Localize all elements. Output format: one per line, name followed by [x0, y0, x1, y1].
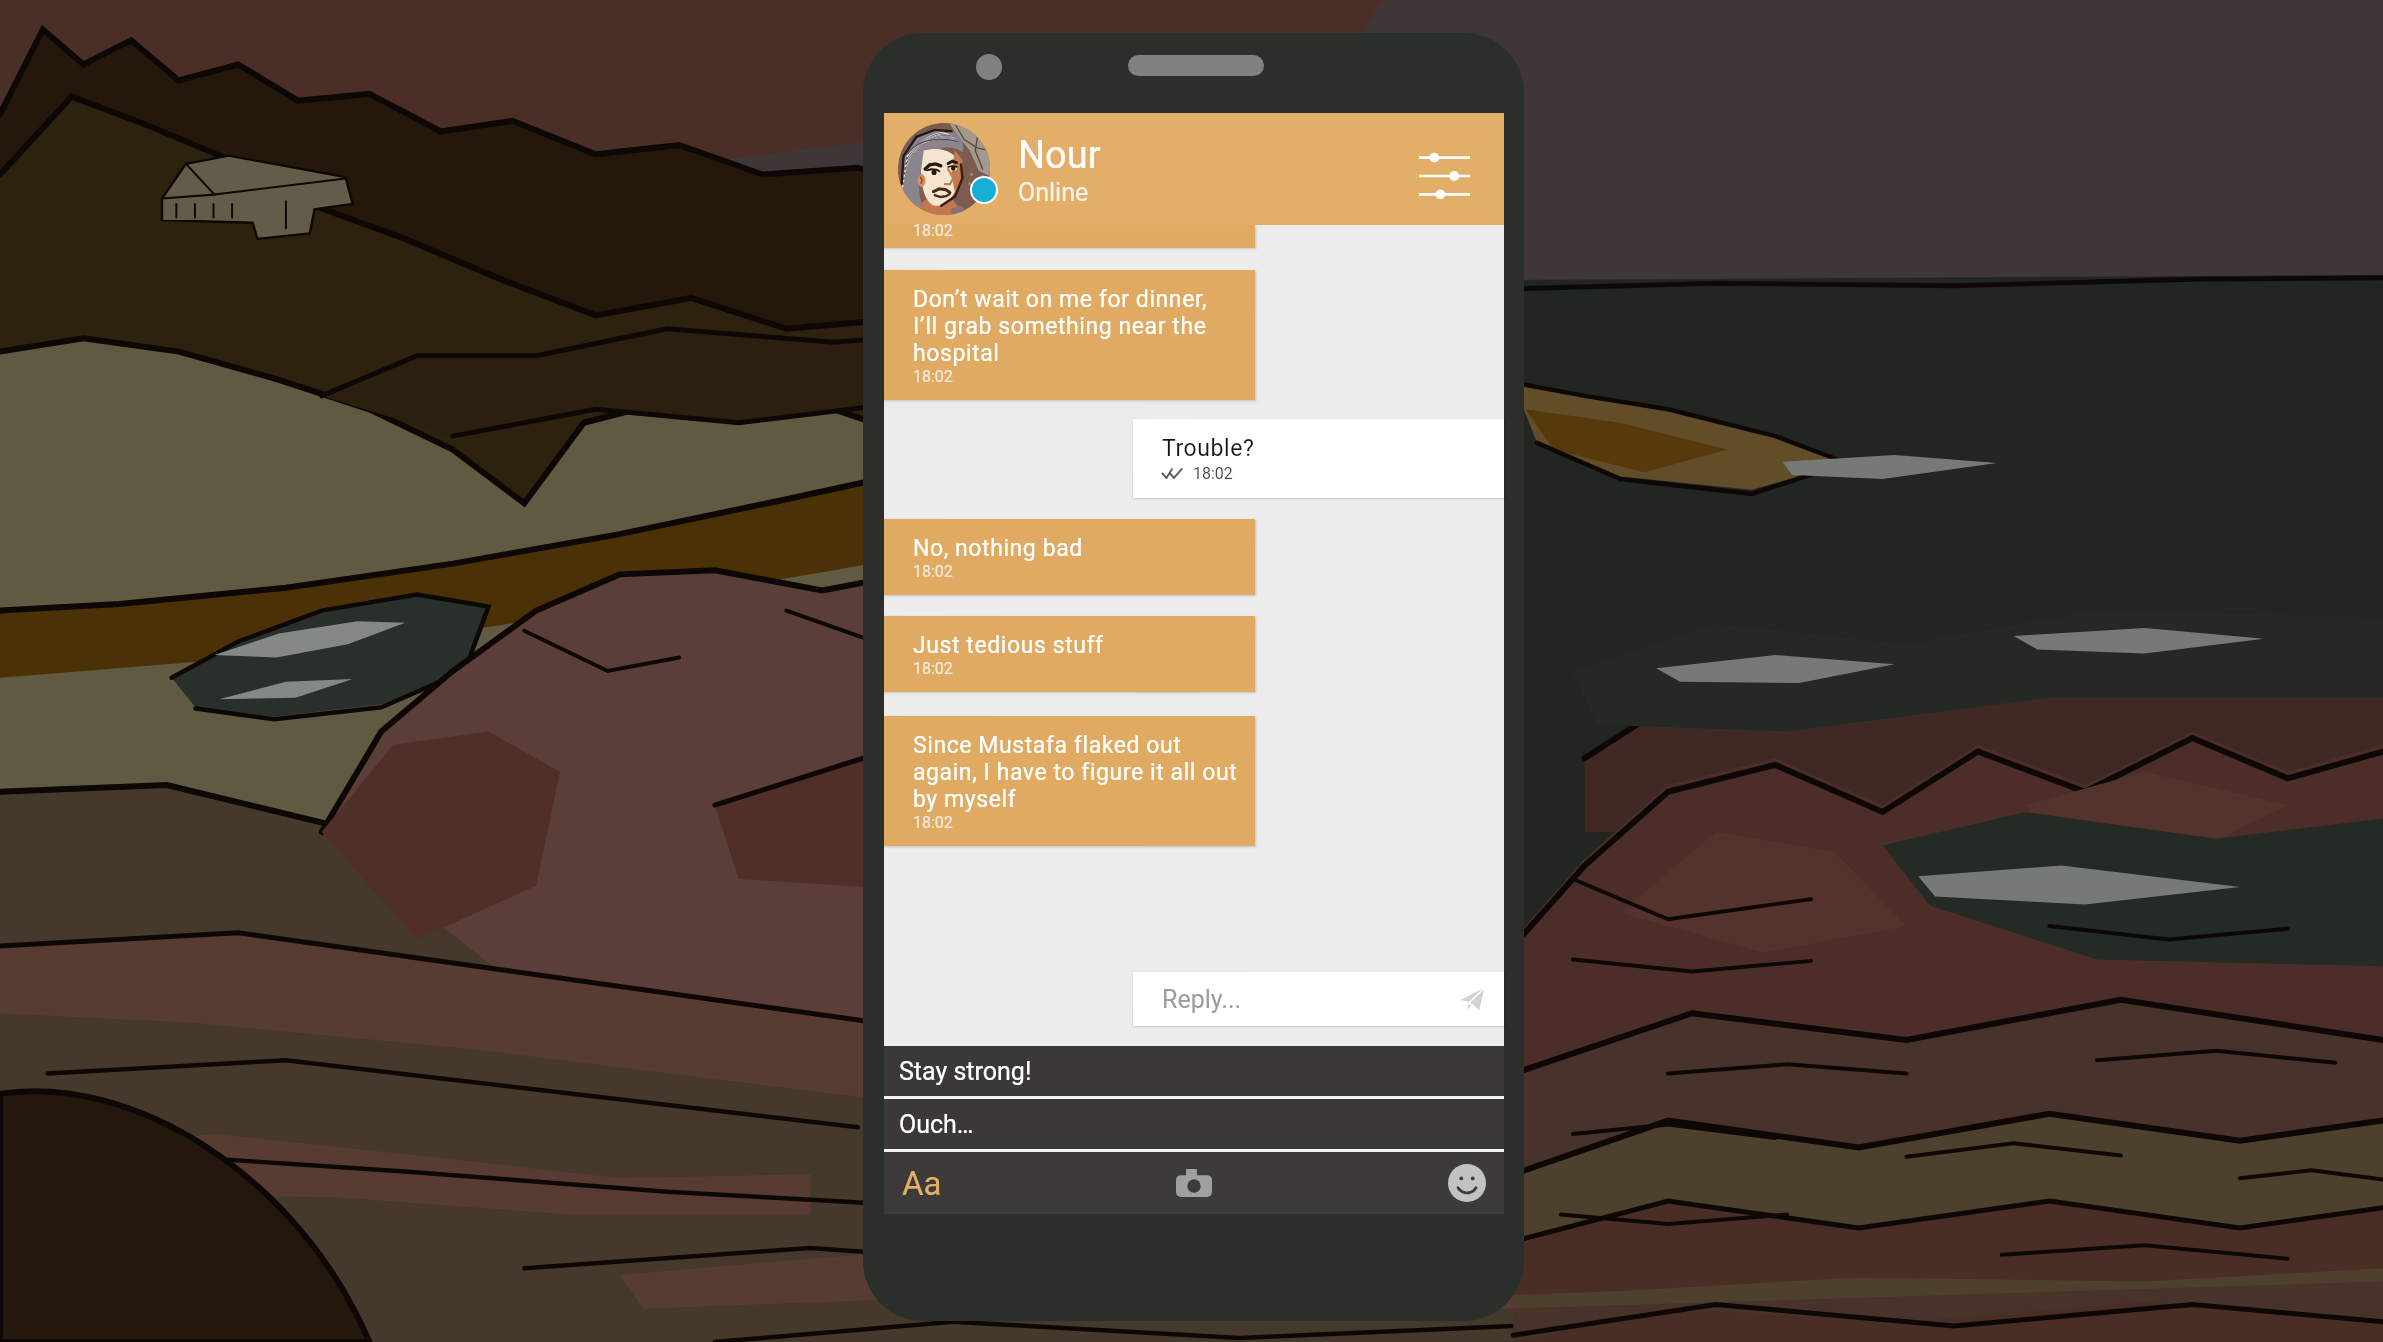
staticText: Reply... — [1162, 985, 1242, 1014]
staticText: 18:02 — [913, 813, 953, 832]
staticText: 18:02 — [913, 562, 953, 581]
button[interactable]: Chat settings — [1418, 150, 1470, 202]
staticText: Ouch… — [899, 1110, 974, 1139]
button[interactable]: Camera — [1090, 1152, 1297, 1214]
button[interactable]: Ouch… — [884, 1099, 1504, 1149]
button[interactable]: Trouble? — [1133, 419, 1504, 498]
staticText: Stay strong! — [899, 1057, 1032, 1086]
button[interactable]: 18:02 — [884, 225, 1255, 248]
button[interactable]: Emoji — [1297, 1152, 1504, 1214]
staticText: Don’t wait on me for dinner, I’ll grab s… — [913, 286, 1208, 367]
staticText: 18:02 — [913, 221, 953, 240]
staticText: 18:02 — [1193, 464, 1233, 483]
button[interactable]: Stay strong! — [884, 1046, 1504, 1096]
button[interactable]: Just tedious stuff — [884, 616, 1255, 692]
button[interactable]: Aa — [884, 1152, 1090, 1214]
staticText: 18:02 — [913, 367, 953, 386]
staticText: Since Mustafa flaked out again, I have t… — [913, 732, 1238, 813]
staticText: Trouble? — [1162, 435, 1255, 462]
button[interactable]: No, nothing bad — [884, 519, 1255, 595]
staticText: 18:02 — [913, 659, 953, 678]
button[interactable]: Nour profile picture — [898, 123, 990, 215]
button[interactable]: Since Mustafa flaked out again, I have t… — [884, 716, 1255, 846]
button[interactable]: Send — [1460, 988, 1484, 1011]
button[interactable]: Reply... — [1133, 972, 1504, 1026]
staticText: Just tedious stuff — [913, 632, 1104, 659]
staticText: No, nothing bad — [913, 535, 1083, 562]
staticText: Online — [1018, 178, 1089, 207]
button[interactable]: Nour — [1018, 133, 1101, 207]
button[interactable]: Don’t wait on me for dinner, I’ll grab s… — [884, 270, 1255, 400]
staticText: Aa — [902, 1164, 942, 1203]
staticText: Nour — [1018, 133, 1101, 178]
